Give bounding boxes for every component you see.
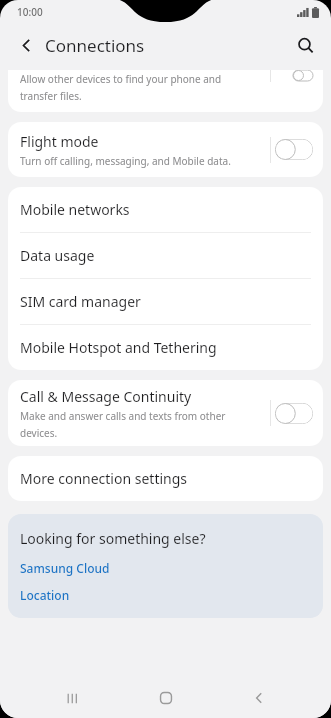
staticText: Flight mode [20, 132, 99, 151]
button[interactable]: SIM card manager [8, 279, 323, 324]
staticText: Data usage [20, 246, 95, 265]
staticText: Looking for something else? [20, 529, 206, 548]
button[interactable]: Home [144, 678, 188, 718]
button[interactable]: Search [289, 29, 321, 61]
staticText: Samsung Cloud [20, 560, 110, 576]
button[interactable]: Call & Message Continuity [8, 380, 323, 446]
button[interactable]: Call & Message Continuity toggle [275, 403, 313, 424]
button[interactable]: Flight mode [8, 122, 323, 177]
staticText: Location [20, 587, 70, 603]
button[interactable]: Flight mode toggle [275, 139, 313, 160]
button[interactable]: Location [20, 587, 70, 603]
button[interactable]: Allow other devices to find your phone a… [8, 70, 323, 112]
staticText: devices. [20, 426, 58, 440]
staticText: Allow other devices to find your phone a… [20, 72, 222, 86]
staticText: Make and answer calls and texts from oth… [20, 409, 226, 423]
button[interactable]: Samsung Cloud [20, 560, 110, 576]
button[interactable]: Back [237, 678, 281, 718]
staticText: Turn off calling, messaging, and Mobile … [20, 154, 231, 168]
button[interactable]: Mobile networks [8, 187, 323, 232]
staticText: 10:00 [17, 5, 43, 19]
staticText: More connection settings [20, 469, 188, 488]
staticText: transfer files. [20, 89, 82, 103]
button[interactable]: Recent apps [50, 678, 94, 718]
button[interactable]: Mobile Hotspot and Tethering [8, 325, 323, 370]
staticText: Mobile Hotspot and Tethering [20, 338, 217, 357]
button[interactable]: Navigate up [11, 30, 41, 60]
staticText: Mobile networks [20, 200, 130, 219]
staticText: Call & Message Continuity [20, 387, 192, 406]
button[interactable]: More connection settings [8, 456, 323, 501]
button[interactable]: Data usage [8, 233, 323, 278]
button[interactable]: Nearby device scanning toggle [275, 70, 313, 81]
staticText: Connections [45, 34, 145, 57]
staticText: SIM card manager [20, 292, 141, 311]
